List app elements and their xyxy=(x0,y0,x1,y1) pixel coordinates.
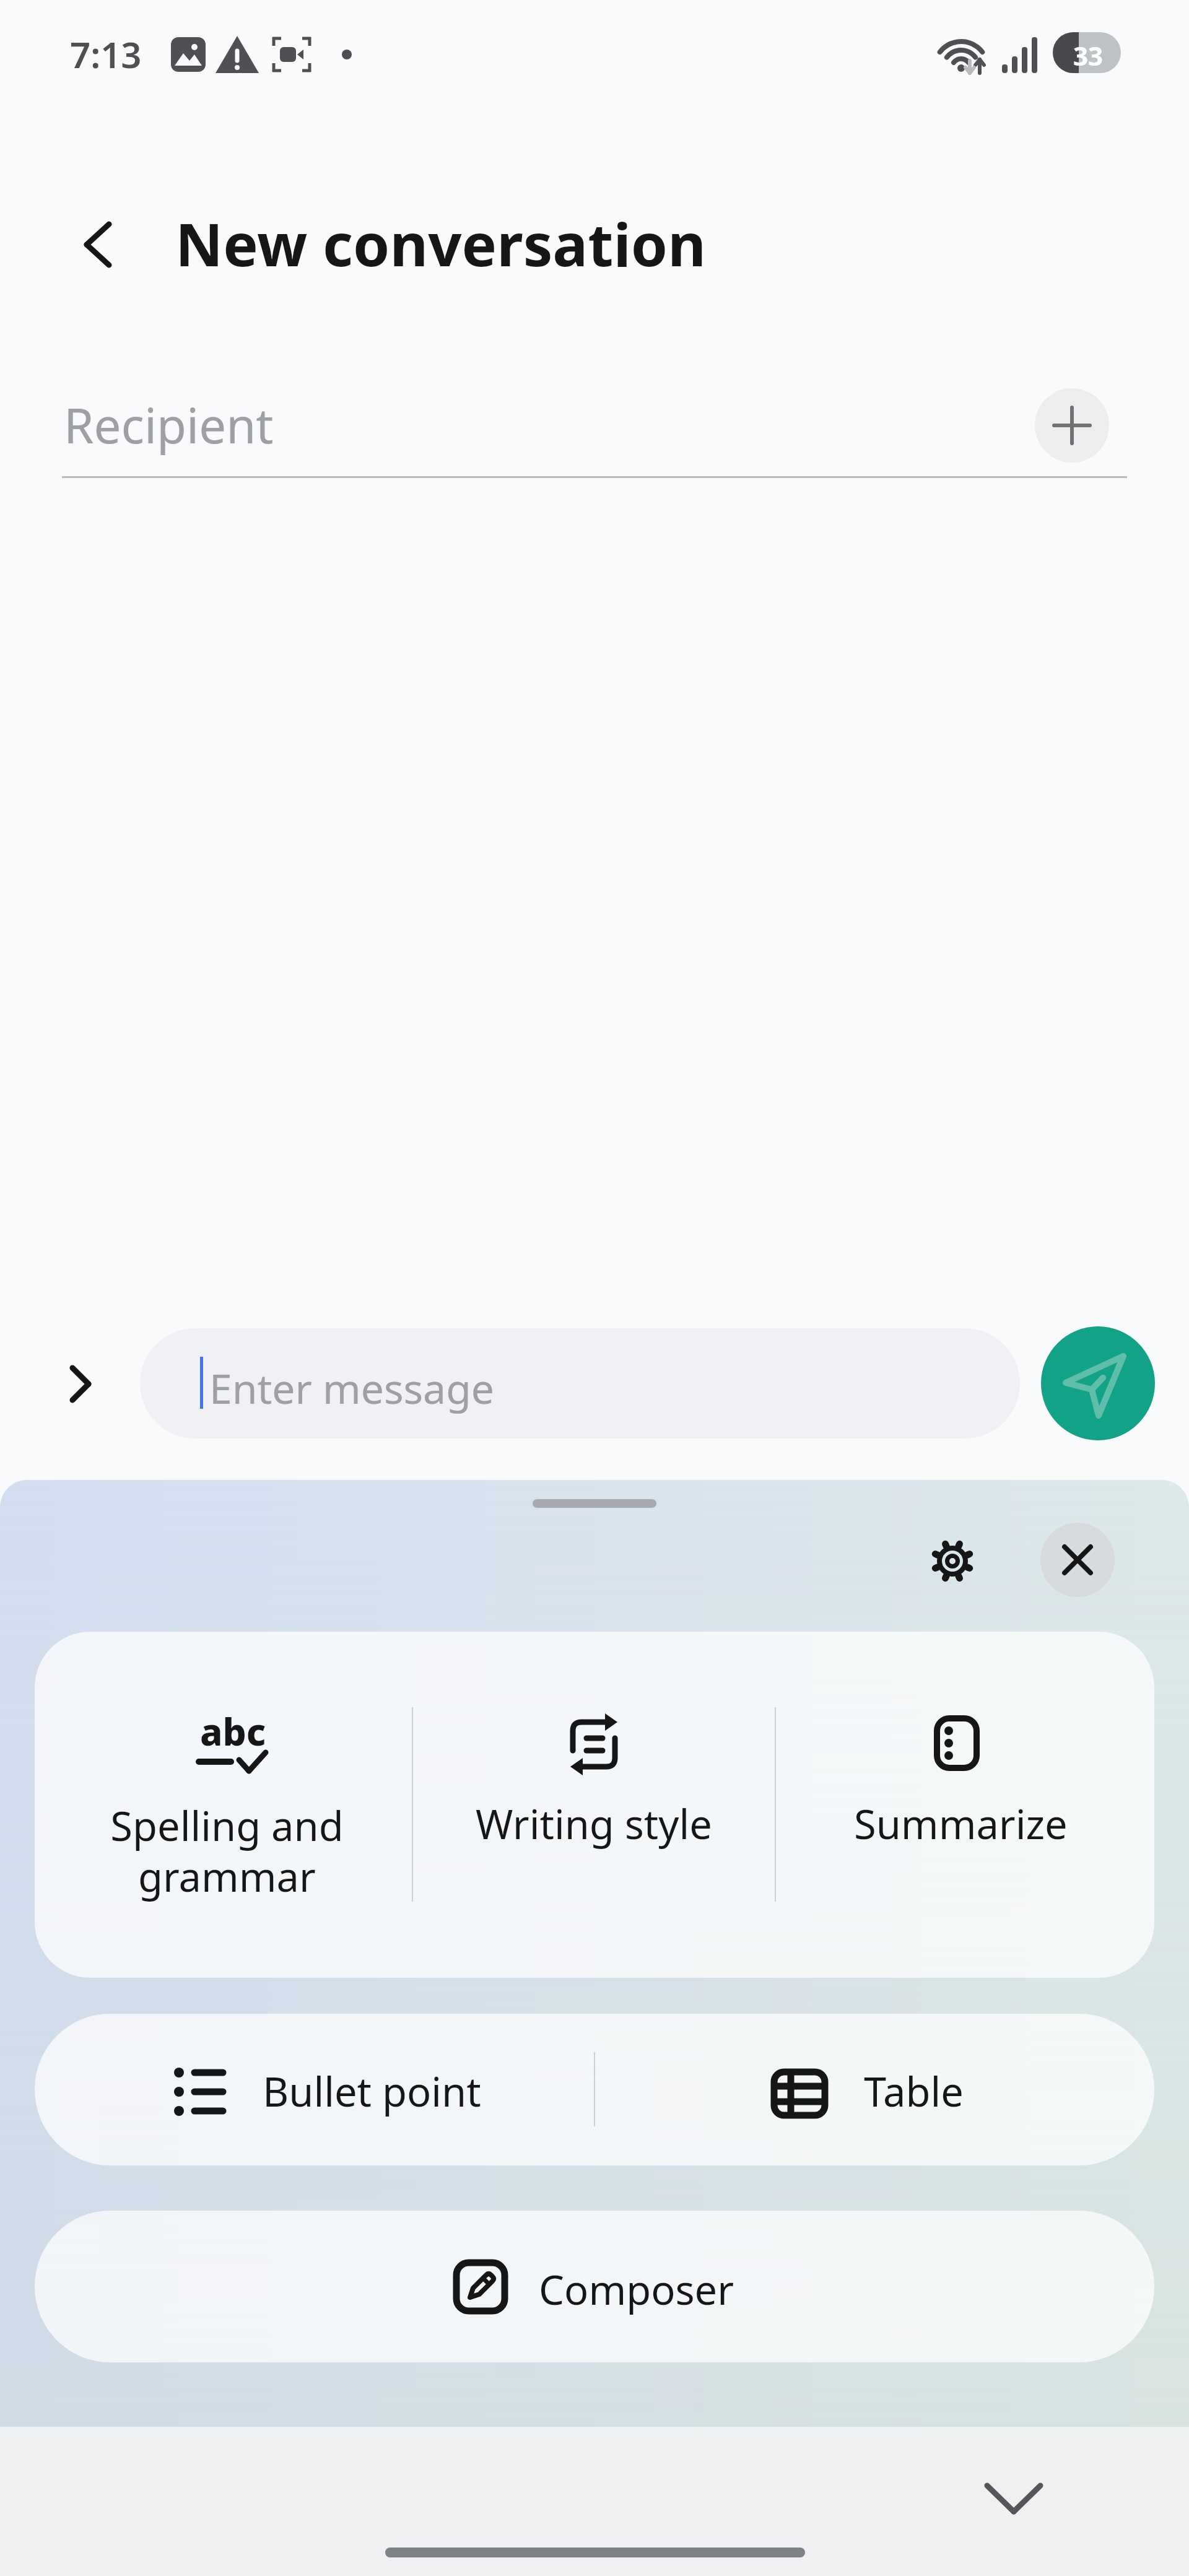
button[interactable] xyxy=(972,2461,1055,2536)
button[interactable] xyxy=(1040,1523,1115,1597)
staticText: Writing style xyxy=(476,1796,712,1851)
button[interactable] xyxy=(1041,1326,1155,1440)
staticText: abc xyxy=(200,1706,266,1753)
button[interactable]: Table xyxy=(595,2014,1154,2165)
button[interactable] xyxy=(50,1350,111,1418)
staticText: New conversation xyxy=(175,203,706,283)
staticText: Table xyxy=(864,2064,964,2119)
button[interactable]: Writing style xyxy=(413,1632,775,1978)
staticText: Recipient xyxy=(64,392,274,458)
staticText: Composer xyxy=(539,2262,734,2317)
button[interactable]: abc xyxy=(35,1632,412,1978)
button[interactable] xyxy=(915,1524,990,1598)
staticText: 7:13 xyxy=(70,30,142,79)
staticText: Spelling and grammar xyxy=(110,1798,344,1904)
staticText: Summarize xyxy=(854,1796,1068,1851)
staticText: 33 xyxy=(1073,38,1104,73)
button[interactable] xyxy=(1035,388,1109,463)
button[interactable]: Summarize xyxy=(776,1632,1154,1978)
staticText: Enter message xyxy=(209,1360,494,1416)
button[interactable]: Bullet point xyxy=(35,2014,594,2165)
button[interactable] xyxy=(62,204,133,285)
button[interactable]: Enter message xyxy=(140,1328,1020,1438)
staticText: Bullet point xyxy=(263,2064,481,2119)
button[interactable]: Composer xyxy=(35,2211,1154,2362)
